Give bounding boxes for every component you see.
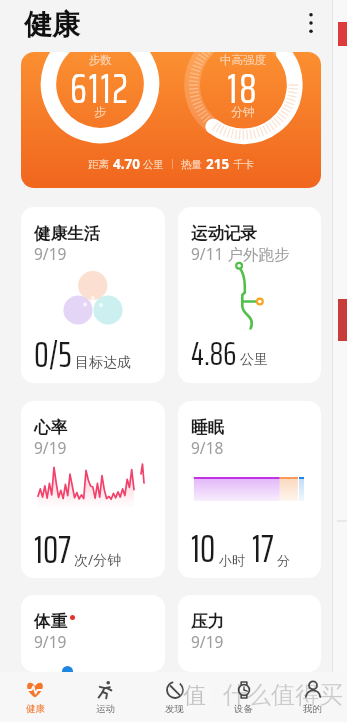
button[interactable]: 健康生活 [21, 207, 165, 383]
button[interactable]: 心率 [21, 401, 165, 578]
staticText: 压力 [191, 611, 224, 632]
staticText: 心率 [34, 417, 67, 438]
button[interactable]: 步数 [21, 52, 321, 188]
staticText: 18 [191, 55, 295, 121]
staticText: 9/18 [191, 437, 224, 458]
button[interactable]: 健康 [0, 672, 70, 722]
staticText: 步 [48, 104, 152, 119]
staticText: 睡眠 [191, 417, 224, 438]
staticText: 设备 [234, 703, 253, 715]
button[interactable]: 运动记录 [178, 207, 321, 383]
staticText: 热量 [181, 158, 202, 171]
staticText: 中高强度 [191, 53, 295, 68]
button[interactable]: 运动 [70, 672, 140, 722]
staticText: 9/19 [191, 631, 224, 652]
staticText: 发现 [165, 703, 184, 715]
staticText: 健康生活 [34, 223, 100, 244]
staticText: 步数 [48, 53, 152, 68]
staticText: 4.86 [191, 327, 237, 380]
staticText: 体重 [34, 611, 67, 632]
staticText: 距离 [88, 158, 109, 171]
staticText: 健康 [24, 7, 80, 42]
staticText: 值 [183, 681, 206, 710]
button[interactable]: 我的 [278, 672, 347, 722]
button[interactable]: 体重 [21, 595, 165, 672]
staticText: 公里 [143, 158, 164, 171]
button[interactable]: 睡眠 [178, 401, 321, 578]
staticText: 健康 [26, 703, 45, 715]
staticText: 4.70 [113, 155, 140, 173]
button[interactable]: More options [300, 12, 322, 34]
staticText: 分 [277, 552, 290, 568]
staticText: 次/分钟 [74, 550, 122, 569]
staticText: 6112 [48, 55, 152, 121]
staticText: 9/11 户外跑步 [191, 243, 290, 264]
staticText: 分钟 [191, 104, 295, 119]
staticText: 0/5 [34, 325, 72, 383]
staticText: 107 [34, 519, 71, 578]
staticText: 215 [206, 155, 230, 173]
staticText: 10 [191, 518, 216, 578]
staticText: 9/19 [34, 631, 67, 652]
button[interactable]: 发现 [140, 672, 209, 722]
staticText: 公里 [240, 351, 268, 369]
staticText: 我的 [303, 703, 322, 715]
staticText: 什么值得买 [223, 680, 343, 710]
button[interactable]: 压力 [178, 595, 321, 672]
staticText: 9/19 [34, 243, 67, 264]
staticText: 9/19 [34, 437, 67, 458]
staticText: 运动记录 [191, 223, 257, 244]
staticText: 千卡 [233, 158, 254, 171]
staticText: 17 [252, 518, 274, 578]
staticText: 小时 [219, 552, 245, 568]
staticText: 目标达成 [75, 354, 131, 372]
staticText: 运动 [96, 703, 115, 715]
button[interactable]: 设备 [209, 672, 278, 722]
